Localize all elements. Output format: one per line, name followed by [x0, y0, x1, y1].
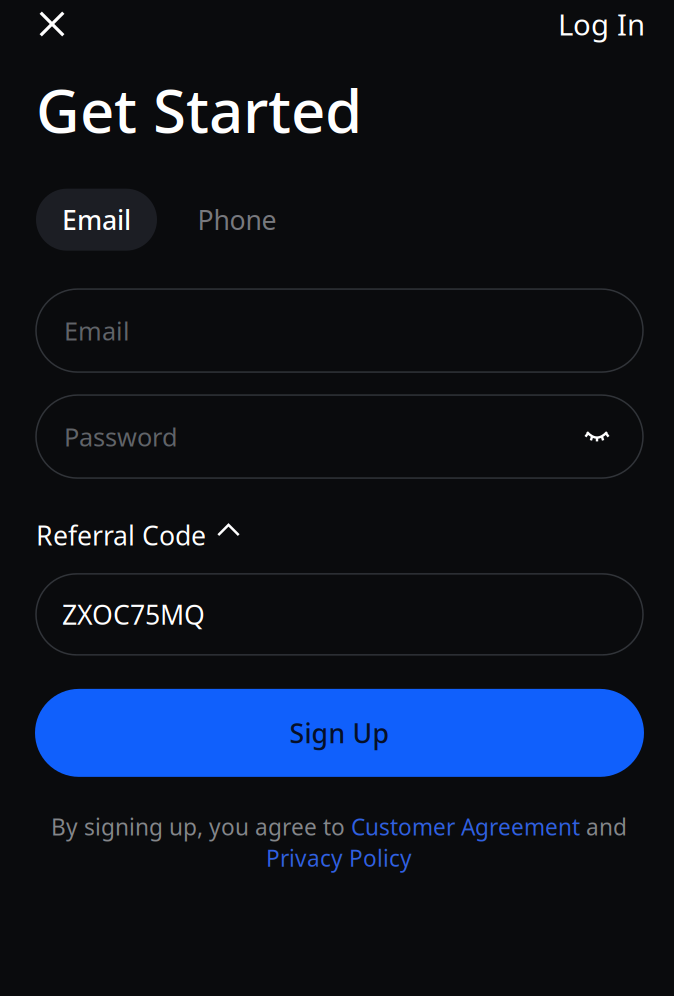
button[interactable]: Show password: [573, 413, 621, 461]
staticText: ZXOC75MQ: [62, 597, 205, 632]
button[interactable]: Referral Code: [36, 518, 643, 552]
staticText: By signing up, you agree to: [51, 812, 351, 842]
staticText: Customer Agreement: [351, 812, 580, 842]
staticText: Log In: [558, 4, 645, 43]
staticText: Email: [62, 202, 131, 237]
button[interactable]: Close: [28, 0, 76, 48]
staticText: Password: [64, 420, 178, 453]
button[interactable]: Password: [36, 395, 643, 478]
staticText: and: [580, 812, 627, 842]
staticText: Phone: [197, 202, 276, 237]
button[interactable]: Log In: [558, 0, 645, 48]
staticText: Privacy Policy: [266, 843, 412, 873]
button[interactable]: Email: [36, 189, 157, 251]
staticText: Sign Up: [289, 715, 389, 751]
staticText: Referral Code: [36, 517, 206, 553]
button[interactable]: ZXOC75MQ: [36, 574, 643, 655]
staticText: Email: [64, 314, 130, 347]
button[interactable]: Privacy Policy: [266, 843, 412, 873]
button[interactable]: Phone: [183, 189, 291, 251]
button[interactable]: Customer Agreement: [351, 812, 580, 842]
staticText: Get Started: [36, 70, 362, 150]
button[interactable]: Sign Up: [35, 689, 644, 777]
button[interactable]: Email: [36, 289, 643, 372]
